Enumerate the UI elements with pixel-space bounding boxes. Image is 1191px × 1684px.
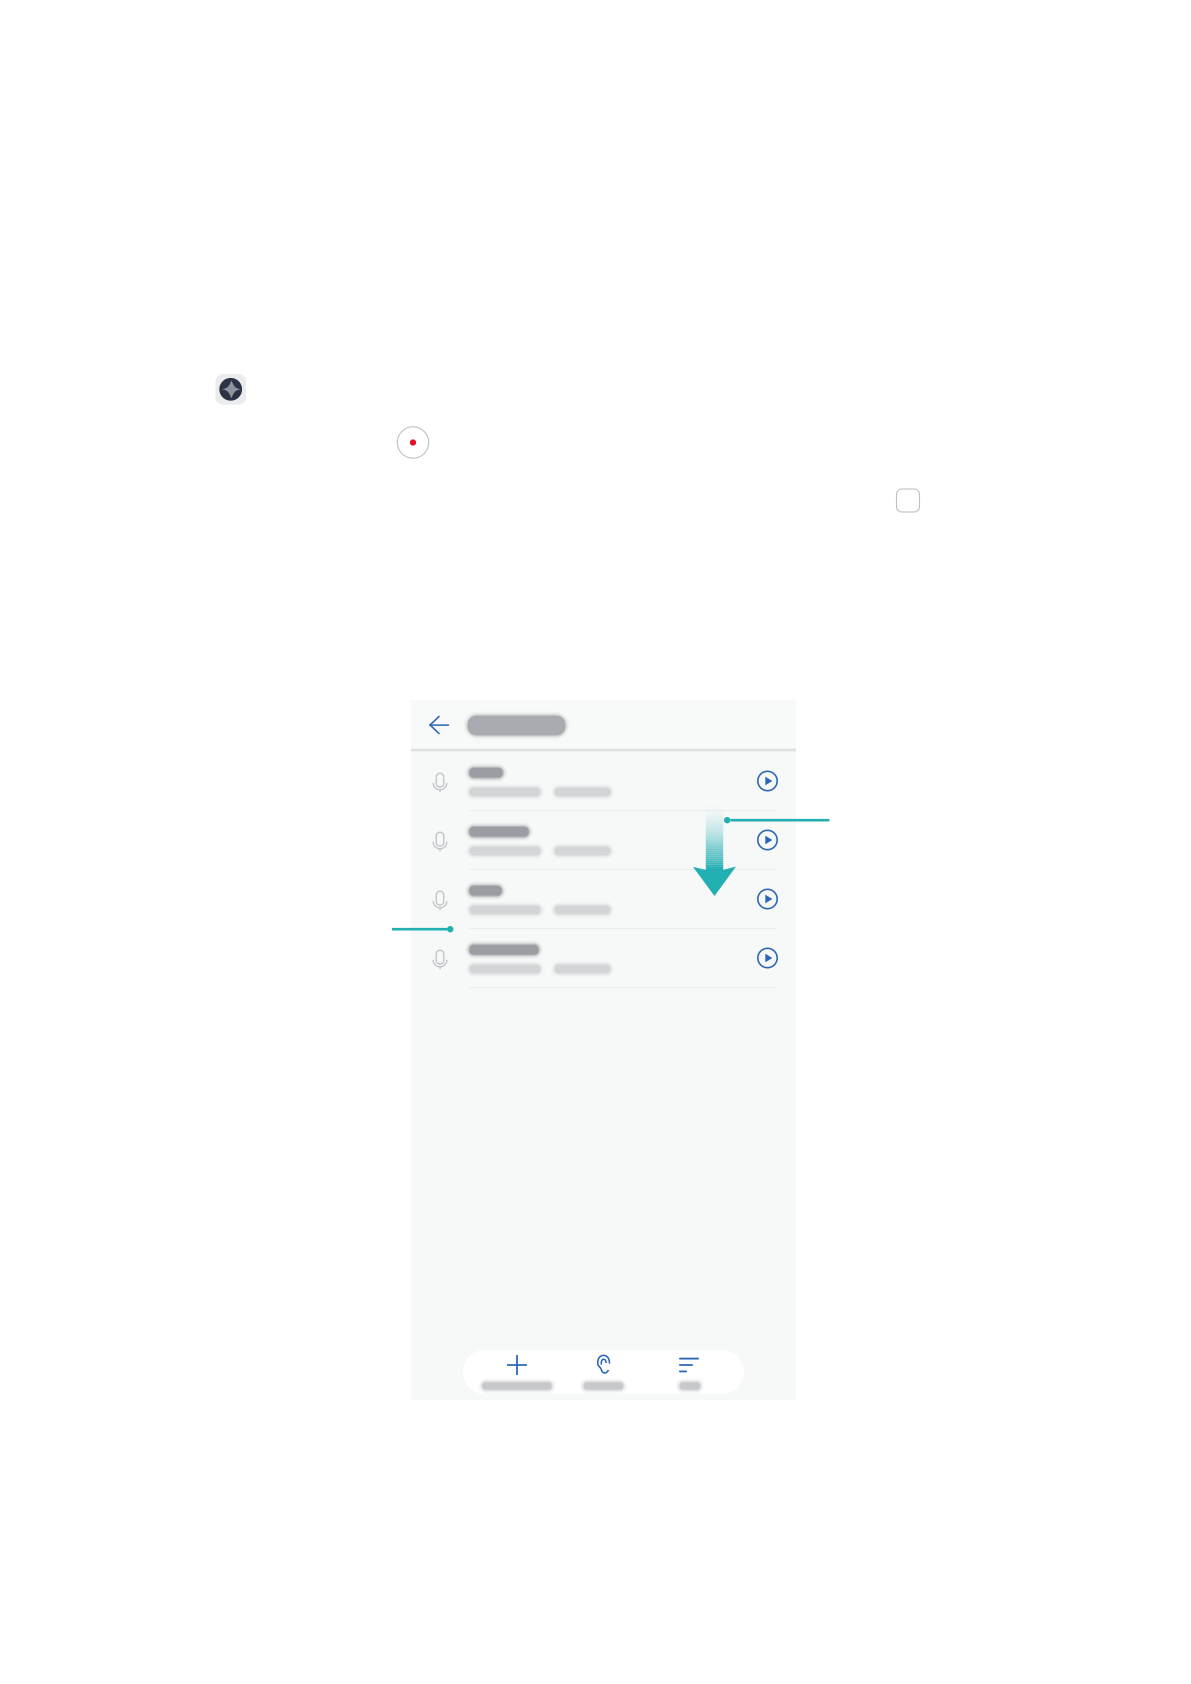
button[interactable]: save	[411, 752, 796, 811]
button[interactable]: Play	[750, 882, 784, 916]
button[interactable]: Sort	[647, 1350, 733, 1394]
button[interactable]: Back	[420, 706, 458, 744]
button[interactable]: working	[411, 811, 796, 870]
button[interactable]: New recording	[474, 1350, 560, 1394]
button[interactable]: sing	[411, 870, 796, 929]
button[interactable]: Play	[750, 941, 784, 975]
button[interactable]: Play	[750, 823, 784, 857]
button[interactable]: Play	[750, 764, 784, 798]
button[interactable]: meetings	[411, 929, 796, 988]
button[interactable]: Earpiece	[560, 1350, 646, 1394]
